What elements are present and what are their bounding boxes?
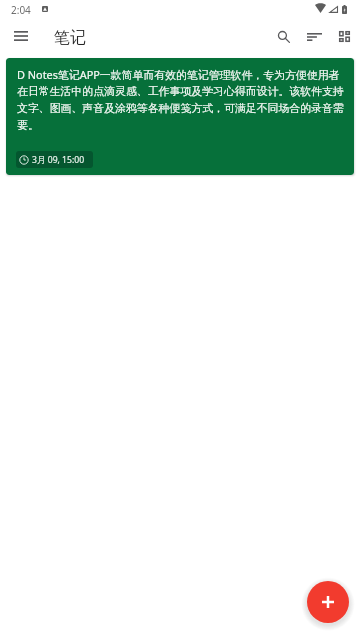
button[interactable]: Sort notes	[300, 22, 329, 51]
staticText: D Notes笔记APP一款简单而有效的笔记管理软件，专为方便使用者在日常生活中…	[17, 67, 347, 133]
button[interactable]: 3月 09, 15:00	[16, 151, 93, 168]
staticText: 3月 09, 15:00	[32, 154, 85, 166]
staticText: 笔记	[54, 28, 86, 48]
staticText: 2:04	[11, 3, 31, 17]
button[interactable]: Change layout	[330, 22, 359, 51]
button[interactable]: Create new note	[307, 581, 349, 623]
button[interactable]: Open navigation menu	[7, 22, 35, 50]
button[interactable]: Search	[269, 22, 298, 51]
button[interactable]: D Notes笔记APP一款简单而有效的笔记管理软件，专为方便使用者在日常生活中…	[6, 58, 354, 175]
